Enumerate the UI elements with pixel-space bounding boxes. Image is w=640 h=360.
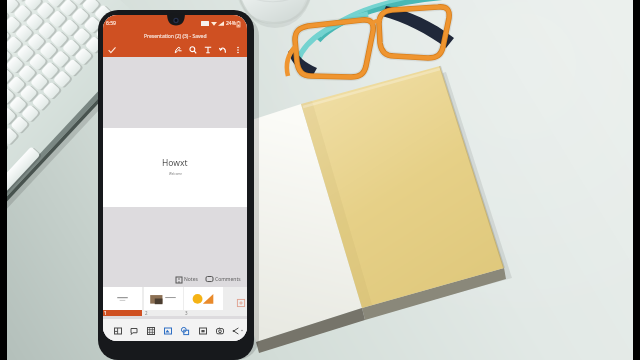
button[interactable]: Add slide — [237, 299, 245, 307]
button[interactable]: Text box — [195, 319, 210, 341]
button[interactable]: 3 — [184, 287, 223, 316]
button[interactable]: Search — [185, 42, 200, 57]
button[interactable]: Shape — [126, 319, 141, 341]
staticText: 24% — [226, 20, 236, 27]
staticText: Presentation (2) (3) - Saved — [144, 33, 207, 40]
button[interactable]: 2 — [144, 287, 183, 316]
button[interactable]: Undo — [215, 42, 230, 57]
staticText: Welcome — [169, 172, 182, 176]
button[interactable]: Draw — [170, 42, 185, 57]
staticText: Notes — [184, 276, 198, 283]
staticText: 3 — [185, 310, 188, 316]
button[interactable]: More options — [230, 42, 245, 57]
button[interactable]: Table — [143, 319, 158, 341]
button[interactable]: Camera — [212, 319, 227, 341]
button[interactable]: New slide — [110, 319, 125, 341]
button[interactable]: 1 — [103, 287, 142, 316]
staticText: 1 — [104, 310, 107, 316]
button[interactable]: More — [237, 319, 247, 341]
staticText: Howxt — [162, 157, 188, 169]
button[interactable]: Comments — [206, 276, 241, 283]
staticText: Comments — [215, 276, 241, 283]
button[interactable]: Shapes — [177, 319, 192, 341]
staticText: 2 — [145, 310, 148, 316]
button[interactable]: Notes — [176, 276, 198, 283]
button[interactable]: Share — [228, 319, 243, 341]
button[interactable]: Picture — [160, 319, 175, 341]
staticText: 6:59 — [106, 20, 116, 27]
button[interactable]: Done — [104, 42, 120, 57]
button[interactable]: Format text — [200, 42, 215, 57]
